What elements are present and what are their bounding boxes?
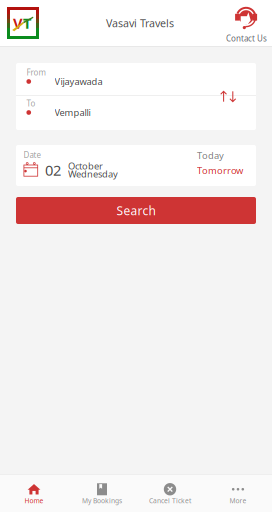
staticText: Today bbox=[197, 149, 224, 162]
button[interactable]: Search bbox=[16, 197, 256, 224]
button[interactable]: Cancel Ticket bbox=[136, 474, 204, 512]
staticText: Date bbox=[23, 150, 41, 160]
staticText: Contact Us bbox=[226, 33, 267, 44]
staticText: Home bbox=[24, 496, 43, 505]
staticText: October bbox=[68, 160, 103, 172]
staticText: Search bbox=[116, 202, 155, 218]
button[interactable]: My Bookings bbox=[68, 474, 136, 512]
staticText: T bbox=[23, 13, 31, 33]
button[interactable]: Vasavi Travels home bbox=[0, 7, 39, 39]
button[interactable]: More bbox=[204, 474, 272, 512]
button[interactable]: From Vijayawada bbox=[16, 63, 256, 95]
button[interactable]: Tomorrow bbox=[197, 166, 243, 175]
staticText: More bbox=[229, 496, 246, 505]
staticText: Tomorrow bbox=[197, 164, 243, 177]
staticText: Cancel Ticket bbox=[149, 496, 191, 505]
staticText: Vempalli bbox=[55, 106, 91, 119]
button[interactable]: Home bbox=[0, 474, 68, 512]
staticText: Vijayawada bbox=[55, 75, 103, 88]
staticText: To bbox=[26, 98, 35, 109]
staticText: 02 bbox=[45, 160, 61, 180]
button[interactable]: Date 02 October Wednesday bbox=[16, 145, 118, 186]
button[interactable]: Swap source and destination bbox=[214, 85, 242, 108]
staticText: From bbox=[26, 67, 45, 78]
staticText: V bbox=[13, 13, 23, 33]
staticText: Vasavi Travels bbox=[106, 16, 174, 30]
staticText: My Bookings bbox=[82, 496, 122, 505]
button[interactable]: Today bbox=[197, 151, 224, 160]
staticText: Wednesday bbox=[68, 168, 118, 180]
button[interactable]: Contact Us bbox=[226, 0, 272, 46]
button[interactable]: To Vempalli bbox=[16, 96, 256, 130]
